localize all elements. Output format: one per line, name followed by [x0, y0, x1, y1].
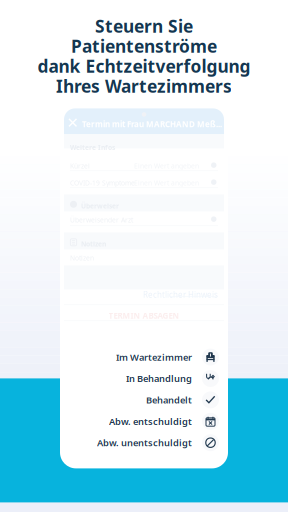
button[interactable]: Behandelt	[64, 389, 224, 411]
staticText: Ihres Wartezimmers	[56, 74, 232, 97]
staticText: Anstehend	[175, 446, 217, 457]
staticText: Überweiser	[81, 201, 119, 210]
button[interactable]: In Behandlung	[64, 368, 224, 389]
staticText: COVID-19 Symptome	[70, 178, 135, 187]
staticText: Abw. entschuldigt	[109, 415, 192, 427]
staticText: Terminstatus	[71, 446, 123, 457]
staticText: Steuern Sie	[95, 14, 193, 37]
staticText: Notizen	[81, 239, 106, 248]
staticText: Überweisender Arzt	[70, 215, 133, 224]
staticText: Weitere Infos	[70, 143, 115, 152]
staticText: Behandelt	[146, 394, 192, 406]
staticText: Im Wartezimmer	[116, 351, 192, 363]
staticText: Patientenströme	[71, 34, 217, 57]
staticText: Termin mit Frau MARCHAND Meß...	[82, 119, 222, 129]
staticText: Rechtlicher Hinweis	[143, 289, 218, 300]
staticText: Kürzel	[70, 161, 90, 170]
staticText: Notizen	[70, 253, 94, 262]
staticText: Abw. unentschuldigt	[97, 436, 192, 449]
staticText: dank Echtzeitverfolgung	[37, 54, 250, 77]
button[interactable]: Abw. unentschuldigt	[64, 432, 224, 453]
staticText: TERMIN ABSAGEN	[108, 310, 179, 321]
staticText: In Behandlung	[126, 372, 192, 385]
button[interactable]: Im Wartezimmer	[64, 346, 224, 368]
button[interactable]: Abw. entschuldigt	[64, 411, 224, 432]
